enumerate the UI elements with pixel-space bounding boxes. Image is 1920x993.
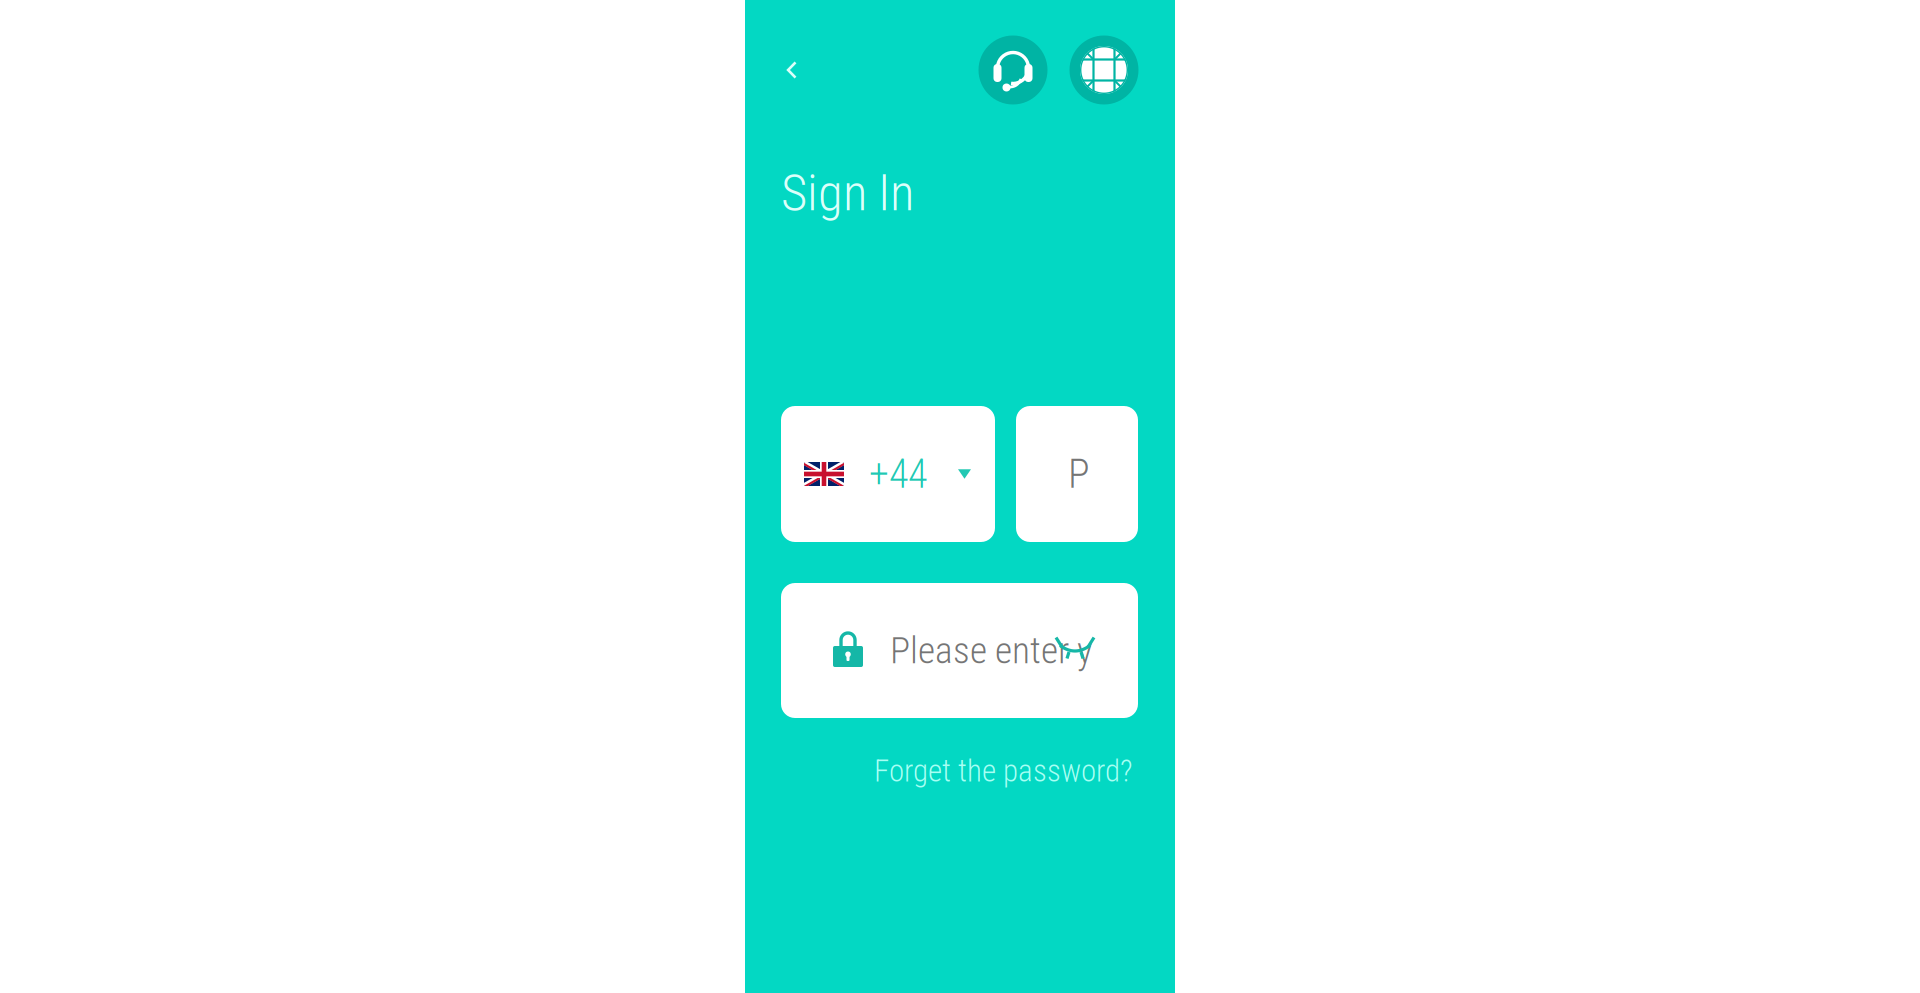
button[interactable]: Forget the password?: [853, 751, 1153, 791]
button[interactable]: P: [1016, 406, 1138, 542]
staticText: Forget the password?: [874, 753, 1132, 789]
button[interactable]: Back: [771, 46, 812, 94]
staticText: Please enter y: [890, 629, 1093, 672]
button[interactable]: Customer support: [978, 35, 1047, 104]
staticText: P: [1068, 451, 1090, 497]
staticText: +44: [869, 451, 927, 497]
button[interactable]: Language: [1069, 35, 1138, 104]
staticText: Sign In: [781, 163, 914, 223]
button[interactable]: Please enter y: [781, 583, 1138, 718]
button[interactable]: +44: [781, 406, 995, 542]
button[interactable]: Show password: [1053, 627, 1097, 671]
